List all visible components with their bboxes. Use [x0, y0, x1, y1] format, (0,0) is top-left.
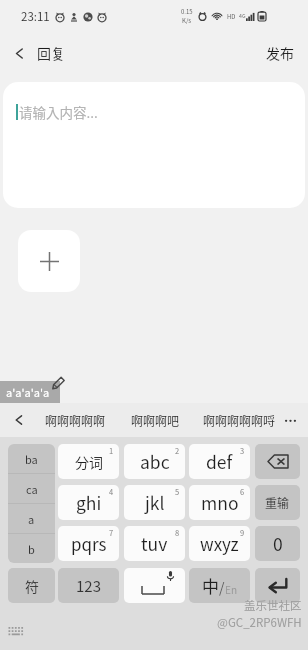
button[interactable]: ba [8, 444, 55, 473]
staticText: 请输入内容... [19, 102, 98, 122]
button[interactable]: 请输入内容... [3, 82, 305, 208]
staticText: wxyz [200, 531, 239, 556]
button[interactable]: 符 [8, 568, 55, 603]
button[interactable]: 0 [255, 526, 300, 561]
staticText: pqrs [71, 531, 107, 556]
staticText: 9 [240, 527, 245, 538]
button[interactable]: Add attachment [18, 230, 80, 292]
button[interactable]: 啊啊啊吧 [126, 403, 185, 437]
staticText: 3 [240, 445, 245, 456]
staticText: def [206, 449, 233, 474]
button[interactable]: tuv [124, 526, 185, 561]
staticText: 啊啊啊吧 [131, 412, 180, 429]
staticText: 0 [273, 531, 283, 556]
staticText: 1 [109, 445, 114, 456]
staticText: 重输 [265, 494, 290, 511]
staticText: ghi [76, 490, 102, 515]
button[interactable]: wxyz [189, 526, 250, 561]
staticText: 啊啊啊啊啊哷 [203, 412, 276, 429]
staticText: ba [25, 451, 38, 467]
button[interactable]: mno [189, 485, 250, 520]
staticText: b [28, 541, 35, 557]
button[interactable]: def [189, 444, 250, 479]
staticText: 发布 [266, 43, 294, 63]
button[interactable]: 回复 [0, 32, 79, 74]
staticText: 盖乐世社区 [244, 597, 302, 614]
other: Edit pinyin [52, 376, 65, 389]
staticText: 123 [76, 575, 101, 597]
button[interactable]: jkl [124, 485, 185, 520]
button[interactable]: 中 [189, 568, 250, 603]
staticText: a'a'a'a'a [6, 384, 50, 400]
staticText: K/s [182, 16, 192, 25]
staticText: 0.15 [181, 7, 193, 16]
staticText: En [225, 582, 237, 596]
staticText: 2 [175, 445, 180, 456]
staticText: 23:11 [21, 8, 50, 25]
staticText: 5 [175, 486, 180, 497]
button[interactable]: 123 [58, 568, 119, 603]
staticText: 分词 [75, 452, 103, 472]
button[interactable]: More candidates [276, 403, 304, 437]
staticText: 8 [175, 527, 180, 538]
staticText: 符 [25, 576, 39, 596]
staticText: 中 [202, 573, 219, 598]
staticText: / [219, 577, 225, 597]
button[interactable]: Delete [255, 444, 300, 479]
staticText: 4G [239, 12, 246, 20]
staticText: 回复 [37, 43, 65, 63]
staticText: HD [227, 12, 236, 21]
button[interactable]: 发布 [252, 32, 308, 74]
button[interactable]: ca [8, 474, 55, 503]
button[interactable]: Switch keyboard [8, 627, 24, 638]
button[interactable]: b [8, 534, 55, 563]
staticText: a [28, 511, 35, 527]
button[interactable]: Enter [255, 568, 300, 603]
staticText: 6 [240, 486, 245, 497]
staticText: jkl [145, 490, 165, 515]
button[interactable]: ghi [58, 485, 119, 520]
staticText: 4 [109, 486, 114, 497]
button[interactable]: 重输 [255, 485, 300, 520]
button[interactable]: 啊啊啊啊啊哷 [198, 403, 281, 437]
button[interactable]: a [8, 504, 55, 533]
button[interactable]: pqrs [58, 526, 119, 561]
staticText: ca [26, 481, 38, 497]
button[interactable]: abc [124, 444, 185, 479]
button[interactable]: 分词 [58, 444, 119, 479]
staticText: abc [140, 449, 170, 474]
staticText: 啊啊啊啊啊 [45, 412, 106, 429]
button[interactable]: Previous candidates [0, 403, 38, 437]
button[interactable]: Space [124, 568, 185, 603]
staticText: @GC_2RP6WFH [217, 614, 302, 631]
button[interactable]: a'a'a'a'a [0, 381, 60, 403]
button[interactable]: 啊啊啊啊啊 [40, 403, 111, 437]
staticText: tuv [141, 531, 168, 556]
staticText: mno [201, 490, 239, 515]
staticText: 7 [109, 527, 114, 538]
